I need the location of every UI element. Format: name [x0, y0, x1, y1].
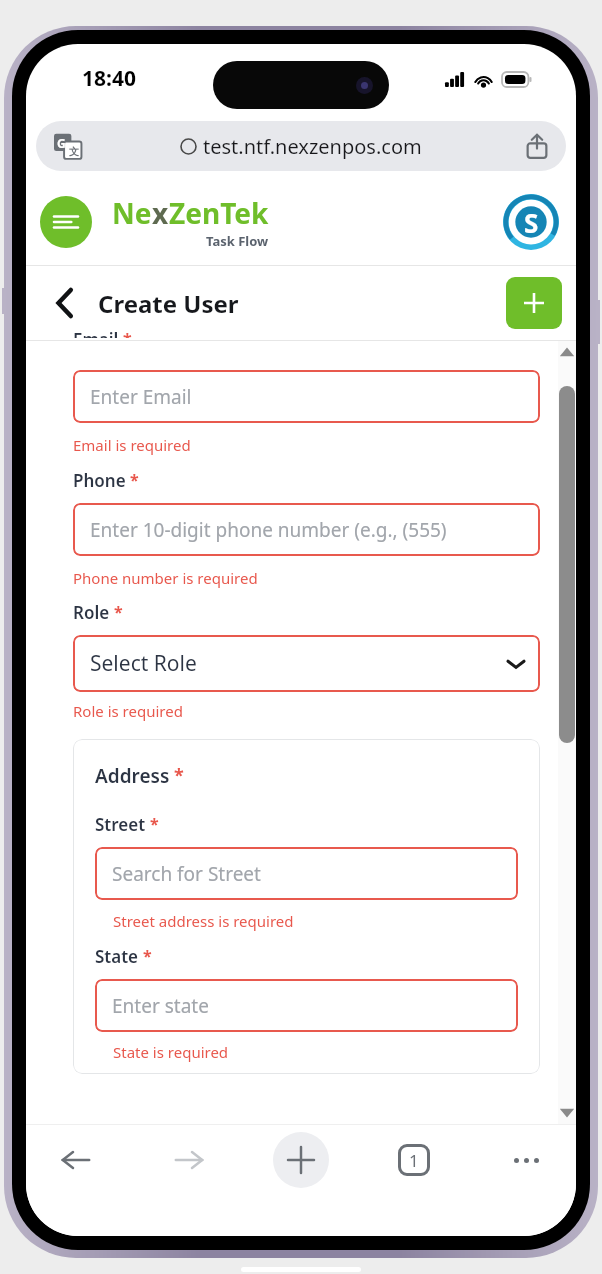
button[interactable]: Enter 10-digit phone number (e.g., (555) [73, 503, 540, 556]
staticText: Phone [73, 469, 126, 492]
staticText: * [130, 469, 139, 491]
button[interactable]: Profile [500, 191, 562, 253]
staticText: 文 [69, 145, 79, 158]
staticText: * [150, 813, 159, 835]
staticText: Select Role [90, 649, 506, 678]
staticText: Email [73, 328, 119, 338]
button[interactable]: Tabs [386, 1132, 442, 1188]
staticText: Street address is required [113, 911, 294, 931]
button[interactable]: Select Role [73, 635, 540, 692]
staticText: * [114, 601, 123, 623]
staticText: S [524, 205, 539, 240]
staticText: Ne [112, 194, 152, 232]
staticText: Role is required [73, 701, 183, 721]
staticText: Enter state [112, 993, 504, 1019]
staticText: Street [95, 813, 146, 836]
staticText: * [123, 328, 132, 338]
staticText: 18:40 [82, 64, 136, 93]
staticText: * [174, 763, 184, 788]
button[interactable]: Enter Email [73, 370, 540, 423]
staticText: Address [95, 763, 170, 789]
staticText: 1 [409, 1149, 419, 1172]
staticText: Role [73, 601, 110, 624]
button[interactable]: Add [506, 277, 562, 329]
staticText: State [95, 945, 139, 968]
staticText: test.ntf.nexzenpos.com [203, 133, 422, 160]
button[interactable]: Forward [161, 1132, 217, 1188]
staticText: Phone number is required [73, 568, 258, 588]
button[interactable]: Menu [40, 196, 92, 248]
button[interactable]: Search for Street [95, 847, 518, 900]
staticText: Enter 10-digit phone number (e.g., (555) [90, 517, 526, 543]
staticText: Task Flow [206, 232, 269, 250]
staticText: G [57, 135, 66, 151]
button[interactable]: Translate [36, 121, 566, 171]
staticText: State is required [113, 1042, 229, 1062]
button[interactable]: More [498, 1132, 554, 1188]
staticText: * [143, 945, 152, 967]
button[interactable]: New tab [273, 1132, 329, 1188]
button[interactable]: Share [524, 133, 550, 159]
staticText: x [152, 194, 169, 232]
button[interactable]: Translate [54, 132, 82, 160]
staticText: Create User [98, 287, 239, 320]
button[interactable]: Back [44, 283, 84, 323]
staticText: Search for Street [112, 861, 504, 887]
button[interactable]: Back [48, 1132, 104, 1188]
staticText: Enter Email [90, 384, 526, 410]
button[interactable]: Enter state [95, 979, 518, 1032]
staticText: Email is required [73, 435, 191, 455]
staticText: ZenTek [169, 194, 269, 232]
